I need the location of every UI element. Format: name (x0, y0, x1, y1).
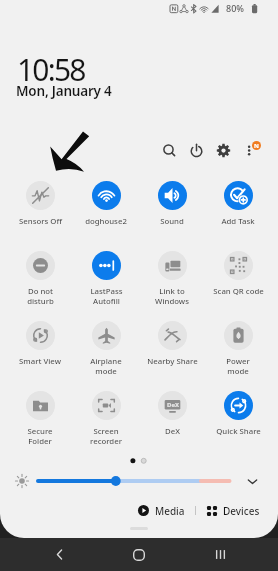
button[interactable]: Expand (244, 473, 260, 489)
button[interactable]: Airplane mode (73, 318, 139, 388)
staticText: LastPass Autofill (90, 286, 123, 306)
button[interactable]: Back (37, 538, 81, 571)
staticText: DeX (165, 426, 180, 437)
staticText: Screen recorder (90, 426, 122, 446)
staticText: Sound (160, 216, 184, 227)
button[interactable]: Recents (198, 538, 242, 571)
button[interactable]: Sound (139, 178, 205, 248)
staticText: Link to Windows (155, 286, 189, 306)
staticText: Smart View (19, 356, 61, 367)
button[interactable]: DeX (139, 388, 205, 458)
staticText: Airplane mode (90, 356, 122, 376)
staticText: 80% (226, 2, 244, 14)
staticText: N (254, 142, 259, 150)
button[interactable]: Power (184, 138, 208, 162)
staticText: Do not disturb (27, 286, 54, 306)
button[interactable]: Screen recorder (73, 388, 139, 458)
button[interactable]: Sensors Off (7, 178, 73, 248)
button[interactable]: Do not disturb (7, 248, 73, 318)
staticText: Media (155, 504, 185, 517)
staticText: DeX (167, 401, 179, 409)
staticText: Devices (223, 504, 260, 517)
staticText: Power mode (226, 356, 250, 376)
staticText: Scan QR code (213, 286, 264, 297)
button[interactable]: Smart View (7, 318, 73, 388)
button[interactable]: Search (157, 138, 181, 162)
staticText: 10:58 (17, 49, 85, 90)
button[interactable]: LastPass Autofill (73, 248, 139, 318)
button[interactable]: Quick Share (205, 388, 271, 458)
button[interactable]: Settings (211, 138, 235, 162)
button[interactable]: More options (238, 138, 262, 162)
staticText: Quick Share (216, 426, 261, 437)
staticText: Sensors Off (19, 216, 62, 227)
button[interactable]: Power mode (205, 318, 271, 388)
button[interactable]: doghouse2 (73, 178, 139, 248)
button[interactable]: Media (135, 502, 188, 519)
button[interactable]: Secure Folder (7, 388, 73, 458)
button[interactable]: Devices (204, 502, 263, 519)
staticText: doghouse2 (85, 216, 127, 227)
button[interactable]: Nearby Share (139, 318, 205, 388)
staticText: Nearby Share (147, 356, 198, 367)
staticText: Mon, January 4 (16, 82, 112, 100)
button[interactable]: Brightness (36, 473, 232, 489)
button[interactable]: Link to Windows (139, 248, 205, 318)
staticText: Add Task (221, 216, 255, 227)
button[interactable]: Add Task (205, 178, 271, 248)
staticText: Secure Folder (27, 426, 53, 446)
button[interactable]: Home (117, 538, 161, 571)
button[interactable]: Scan QR code (205, 248, 271, 318)
